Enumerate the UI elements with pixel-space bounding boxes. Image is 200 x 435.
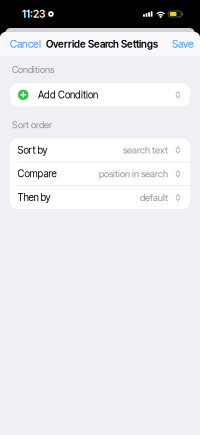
button[interactable]: Cancel	[0, 32, 47, 56]
button[interactable]: Add Condition	[10, 83, 190, 106]
button[interactable]: Save	[166, 32, 200, 56]
staticText: Add Condition	[38, 89, 98, 101]
staticText: Override Search Settings	[46, 38, 158, 50]
button[interactable]: Then by	[10, 186, 190, 209]
staticText: position in search	[99, 168, 168, 179]
staticText: 11:23	[22, 8, 45, 20]
staticText: Sort order	[12, 119, 52, 131]
staticText: Compare	[17, 168, 56, 180]
staticText: Then by	[17, 191, 50, 203]
staticText: Sort by	[17, 144, 47, 156]
staticText: Save	[172, 38, 194, 50]
button[interactable]: Sort by	[10, 139, 190, 162]
staticText: default	[140, 192, 168, 203]
staticText: search text	[123, 144, 168, 156]
staticText: Cancel	[10, 38, 41, 50]
staticText: Conditions	[12, 64, 54, 75]
button[interactable]: Compare	[10, 162, 190, 185]
